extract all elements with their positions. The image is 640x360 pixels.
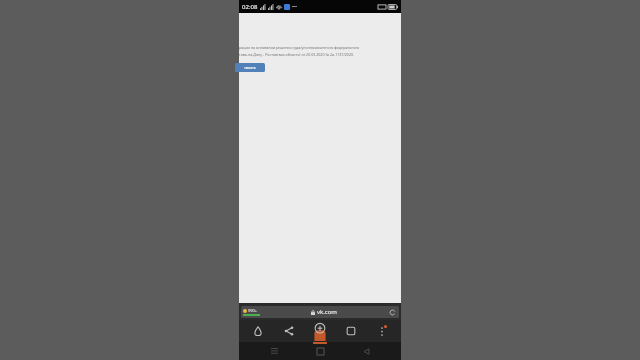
button[interactable]: 990+ [241, 306, 399, 318]
button[interactable]: Add [308, 320, 332, 342]
button[interactable]: Home [309, 342, 331, 360]
staticText: 02:08 [242, 3, 258, 11]
staticText: 990+ [248, 308, 258, 313]
staticText: рации на основании решения суда/уполномо… [239, 45, 401, 50]
button[interactable]: Home [246, 320, 270, 342]
staticText: това-на-Дону - Ростовская область) от 20… [239, 52, 401, 57]
button[interactable]: Recents [263, 342, 285, 360]
button[interactable]: Back [355, 342, 377, 360]
button[interactable]: начать [235, 63, 265, 72]
button[interactable]: Share [277, 320, 301, 342]
staticText: начать [244, 65, 256, 70]
button[interactable]: Tabs [339, 320, 363, 342]
button[interactable]: More [370, 320, 394, 342]
staticText: vk.com [317, 308, 337, 316]
